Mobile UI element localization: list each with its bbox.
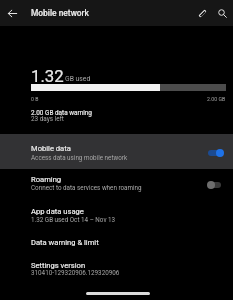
staticText: Access data using mobile network xyxy=(31,154,128,161)
staticText: Mobile data xyxy=(31,144,71,153)
staticText: Mobile network xyxy=(31,8,89,18)
staticText: Roaming xyxy=(31,175,62,184)
staticText: 23 days left xyxy=(31,115,64,123)
staticText: 310410-129320906.129320906 xyxy=(31,269,120,276)
staticText: 1.32 xyxy=(31,66,64,86)
button[interactable]: Data warning & limit xyxy=(0,231,233,249)
staticText: 1.32 GB used Oct 14 – Nov 13 xyxy=(31,216,116,223)
button[interactable]: Back xyxy=(4,5,21,22)
staticText: Data warning & limit xyxy=(31,238,99,247)
button[interactable]: Settings version xyxy=(0,254,233,280)
staticText: Connect to data services when roaming xyxy=(31,184,142,191)
button[interactable]: App data usage xyxy=(0,201,233,227)
staticText: 2.00 GB xyxy=(207,96,226,102)
staticText: GB used xyxy=(65,75,91,83)
staticText: 2.00 GB data warning xyxy=(31,109,92,117)
button[interactable]: Roaming xyxy=(0,168,233,198)
button[interactable]: Mobile data xyxy=(0,134,233,169)
staticText: App data usage xyxy=(31,207,84,216)
button[interactable]: Search xyxy=(215,6,230,21)
staticText: Settings version xyxy=(31,261,86,270)
button[interactable]: Edit xyxy=(195,6,210,21)
staticText: 0 B xyxy=(31,96,39,102)
